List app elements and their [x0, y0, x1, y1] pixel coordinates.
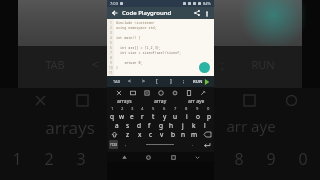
button[interactable]: 5 — [148, 106, 159, 112]
button[interactable]: Keyboard tool 3 — [142, 88, 151, 97]
button[interactable]: More options — [202, 9, 211, 18]
button[interactable]: j — [177, 121, 188, 130]
staticText: < — [92, 56, 99, 72]
button[interactable]: 3 — [127, 106, 137, 112]
button[interactable]: q — [107, 112, 117, 121]
button[interactable]: > — [139, 76, 148, 87]
staticText: j — [182, 121, 184, 130]
button[interactable]: k — [188, 121, 199, 130]
button[interactable]: 0 — [203, 106, 214, 112]
button[interactable]: Symbols — [109, 140, 118, 149]
button[interactable]: Back — [117, 152, 131, 162]
button[interactable]: Keyboard tool 1 — [114, 88, 123, 97]
staticText: 5 — [152, 106, 155, 112]
button[interactable]: Keyboard tool 7 — [198, 88, 207, 97]
staticText: 9 — [196, 106, 199, 112]
button[interactable]: d — [133, 121, 144, 130]
button[interactable]: Share — [192, 8, 202, 18]
button[interactable]: c — [145, 130, 156, 139]
staticText: r — [141, 112, 144, 121]
button[interactable]: l — [199, 121, 210, 130]
button[interactable]: w — [117, 112, 127, 121]
button[interactable]: y — [159, 112, 170, 121]
staticText: array — [154, 98, 167, 105]
button[interactable]: b — [167, 130, 178, 139]
staticText: 6 — [163, 106, 166, 112]
button[interactable]: Home — [141, 152, 155, 162]
staticText: y — [163, 112, 167, 121]
button[interactable]: 9 — [192, 106, 203, 112]
button[interactable]: Period — [185, 140, 201, 149]
button[interactable]: 8 — [181, 106, 192, 112]
button[interactable]: i — [181, 112, 192, 121]
staticText: 2 — [110, 26, 112, 30]
staticText: Code Playground — [122, 9, 172, 17]
button[interactable]: Keyboard tool 5 — [170, 88, 179, 97]
button[interactable]: r — [137, 112, 148, 121]
button[interactable]: Enter — [201, 140, 212, 149]
button[interactable]: p — [203, 112, 214, 121]
button[interactable]: s — [122, 121, 133, 130]
staticText: 7 — [174, 106, 177, 112]
button[interactable]: [ — [152, 76, 161, 87]
staticText: 3 — [76, 148, 86, 170]
button[interactable]: Space — [134, 140, 185, 149]
button[interactable]: Back — [110, 8, 120, 18]
button[interactable]: TAB — [112, 76, 121, 87]
staticText: arrays — [45, 116, 95, 139]
button[interactable]: e — [127, 112, 137, 121]
button[interactable]: Comma — [118, 140, 134, 149]
button[interactable]: ; — [179, 76, 188, 87]
button[interactable]: u — [170, 112, 181, 121]
button[interactable]: < — [125, 76, 134, 87]
button[interactable]: h — [166, 121, 177, 130]
button[interactable]: Run code — [199, 62, 210, 73]
button[interactable]: arr aye — [178, 97, 214, 106]
staticText: . — [192, 141, 194, 148]
button[interactable]: z — [122, 130, 134, 139]
staticText: arr aye — [226, 116, 276, 136]
staticText: 0 — [298, 148, 308, 170]
staticText: 1 — [12, 148, 22, 170]
staticText: 1 — [110, 21, 112, 25]
staticText: RUN — [251, 57, 275, 72]
button[interactable]: Keyboard tool 4 — [156, 88, 165, 97]
button[interactable]: t — [148, 112, 159, 121]
button[interactable]: v — [156, 130, 167, 139]
button[interactable]: m — [189, 130, 200, 139]
staticText: RUN — [193, 79, 203, 85]
staticText: TAB — [113, 79, 121, 84]
button[interactable]: 7 — [170, 106, 181, 112]
button[interactable]: 6 — [159, 106, 170, 112]
staticText: 5 — [139, 148, 149, 170]
button[interactable]: 1 — [107, 106, 117, 112]
button[interactable]: f — [144, 121, 155, 130]
staticText: < — [128, 78, 131, 85]
staticText: int size = sizeof(arr)/sizeof; — [116, 50, 182, 55]
button[interactable]: Shift — [107, 130, 122, 139]
staticText: arr aye — [188, 98, 205, 105]
staticText: 6 — [110, 46, 112, 50]
button[interactable]: x — [134, 130, 145, 139]
button[interactable]: Keyboard tool 6 — [184, 88, 193, 97]
button[interactable]: 4 — [137, 106, 148, 112]
staticText: 7 — [203, 148, 213, 170]
button[interactable]: Recents — [166, 152, 180, 162]
button[interactable]: n — [178, 130, 189, 139]
button[interactable]: o — [192, 112, 203, 121]
button[interactable]: Keyboard tool 2 — [128, 88, 137, 97]
button[interactable]: RUN — [193, 76, 210, 87]
button[interactable]: Backspace — [200, 130, 214, 139]
button[interactable]: array — [142, 97, 178, 106]
staticText: 4 — [110, 36, 112, 40]
button[interactable]: g — [155, 121, 166, 130]
button[interactable]: 2 — [117, 106, 127, 112]
staticText: 8 — [185, 106, 188, 112]
staticText: q — [110, 112, 114, 121]
button[interactable]: a — [111, 121, 122, 130]
button[interactable]: Hide keyboard — [190, 152, 204, 162]
button[interactable]: arrays — [107, 97, 142, 106]
button[interactable]: ] — [166, 76, 175, 87]
